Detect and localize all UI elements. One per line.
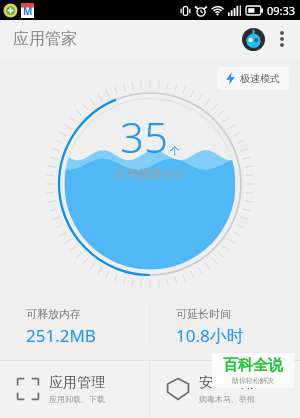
button[interactable]: 应用管理 xyxy=(0,360,149,418)
button[interactable]: 安全应用 xyxy=(150,360,300,418)
button[interactable]: More options xyxy=(269,26,295,52)
staticText: 可延长时间 xyxy=(176,307,231,321)
staticText: 百科全说 xyxy=(223,356,283,375)
staticText: 251.2MB xyxy=(26,324,96,347)
staticText: 可释放内存 xyxy=(26,307,81,321)
staticText: 应用管家 xyxy=(13,29,77,49)
button[interactable]: 可释放内存 xyxy=(0,304,149,350)
staticText: 应用管理 xyxy=(49,374,105,392)
staticText: 09:33 xyxy=(267,3,296,18)
staticText: 安全应用 xyxy=(199,374,255,392)
staticText: M xyxy=(23,4,33,18)
staticText: 应用偷偷运行 xyxy=(114,166,186,181)
button[interactable]: 可延长时间 xyxy=(150,304,300,350)
button[interactable]: 极速模式 xyxy=(217,67,289,90)
button[interactable]: 35 xyxy=(46,80,254,288)
staticText: 助你轻松解决 xyxy=(232,376,274,385)
staticText: 病毒木马、举报 xyxy=(199,394,255,404)
staticText: 35 xyxy=(120,108,168,165)
button[interactable]: 百科全说 xyxy=(212,353,294,388)
staticText: 个 xyxy=(170,144,180,157)
staticText: 10.8小时 xyxy=(176,324,244,347)
staticText: 极速模式 xyxy=(240,72,280,85)
button[interactable]: Assistant xyxy=(237,23,269,55)
staticText: 应用卸载、下载 xyxy=(49,394,105,404)
